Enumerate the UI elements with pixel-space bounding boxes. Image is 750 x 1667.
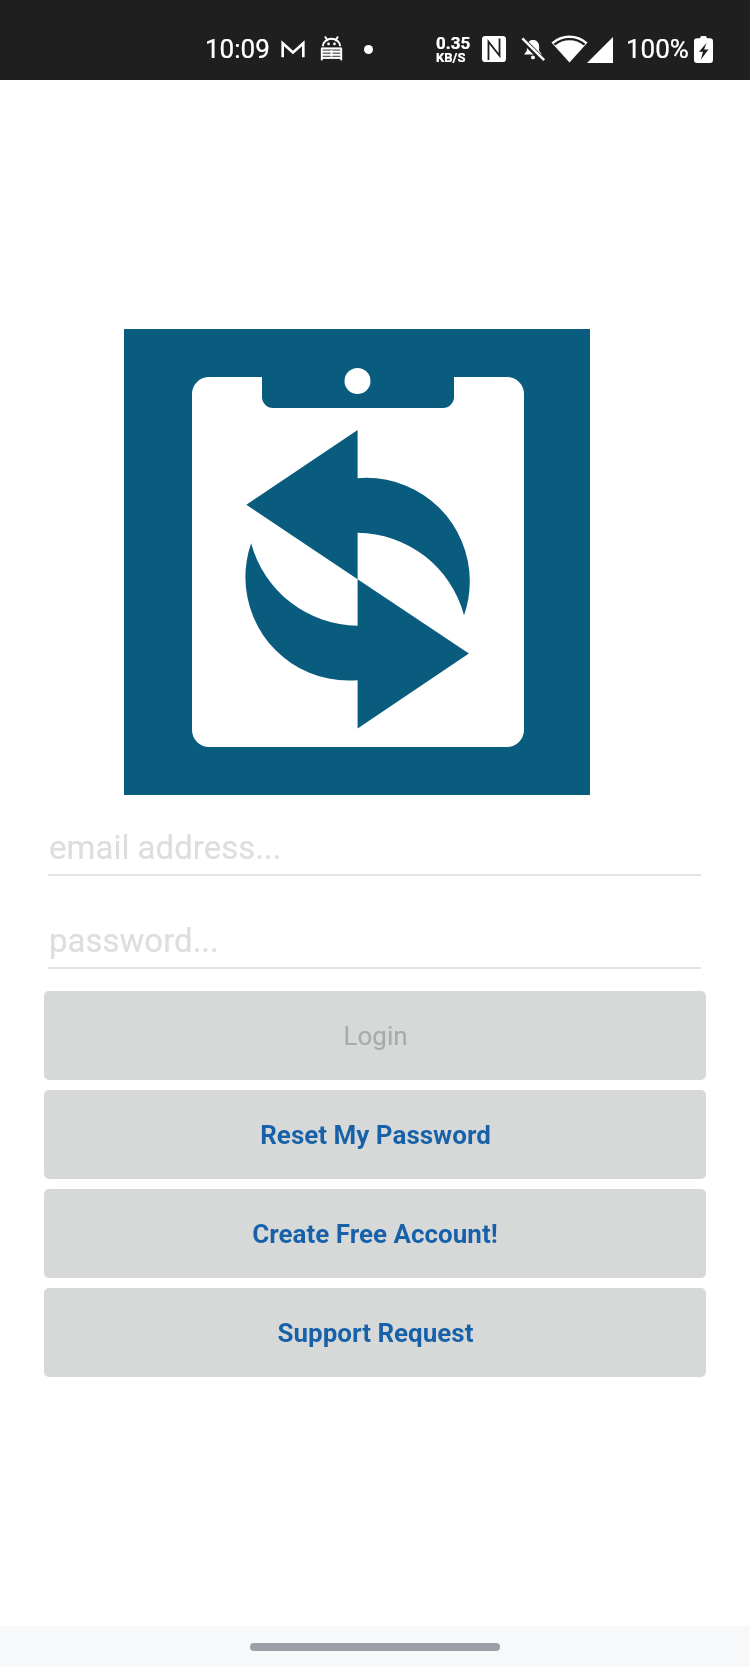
staticText: 10:09 bbox=[205, 34, 270, 64]
button[interactable]: password... bbox=[48, 905, 701, 969]
button[interactable]: Login bbox=[44, 991, 706, 1080]
staticText: 100% bbox=[626, 34, 689, 64]
button[interactable]: email address... bbox=[48, 812, 701, 876]
button[interactable]: Support Request bbox=[44, 1288, 706, 1377]
staticText: 0.35 bbox=[436, 33, 471, 53]
staticText: Reset My Password bbox=[260, 1120, 491, 1150]
staticText: KB/S bbox=[436, 50, 466, 65]
staticText: password... bbox=[49, 921, 219, 960]
staticText: Create Free Account! bbox=[252, 1219, 498, 1249]
staticText: email address... bbox=[49, 828, 282, 867]
button[interactable]: Reset My Password bbox=[44, 1090, 706, 1179]
staticText: Support Request bbox=[277, 1318, 474, 1348]
staticText: Login bbox=[343, 1021, 408, 1051]
button[interactable]: Create Free Account! bbox=[44, 1189, 706, 1278]
